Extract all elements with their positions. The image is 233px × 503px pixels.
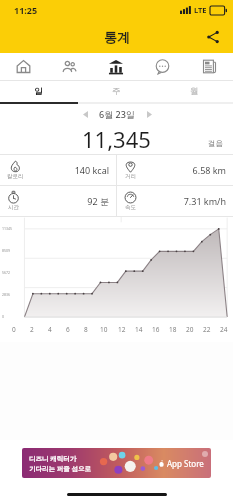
staticText: 8: [84, 325, 88, 334]
staticText: 주: [112, 86, 121, 97]
staticText: 16: [152, 325, 160, 334]
staticText: 6.58 km: [137, 164, 226, 176]
button[interactable]: 거리: [117, 155, 233, 185]
button[interactable]: 일: [0, 81, 77, 102]
staticText: 월: [190, 86, 199, 97]
staticText: 2836: [2, 292, 11, 297]
button[interactable]: Next day: [141, 106, 157, 122]
staticText: 92 분: [20, 195, 109, 207]
button[interactable]: 월: [155, 81, 233, 102]
staticText: 22: [203, 325, 211, 334]
staticText: 8509: [2, 248, 11, 253]
button[interactable]: 디즈니 캐릭터가: [22, 448, 211, 478]
staticText: 6: [66, 325, 70, 334]
staticText: 24: [220, 325, 228, 334]
button[interactable]: Share: [201, 25, 225, 49]
staticText: 통계: [104, 29, 130, 45]
staticText: 시간: [8, 204, 19, 211]
staticText: 7.31 km/h: [137, 195, 226, 207]
button[interactable]: 주: [77, 81, 155, 102]
staticText: 0: [12, 325, 16, 334]
staticText: LTE: [194, 5, 207, 15]
staticText: 11,345: [82, 124, 151, 154]
button[interactable]: 칼로리: [0, 155, 116, 185]
staticText: 20: [186, 325, 194, 334]
button[interactable]: News: [186, 53, 233, 80]
staticText: 12: [118, 325, 126, 334]
staticText: 4: [48, 325, 52, 334]
staticText: 140 kcal: [24, 164, 109, 176]
staticText: 디즈니 캐릭터가: [29, 454, 77, 463]
staticText: 일: [34, 86, 43, 97]
staticText: 11345: [2, 226, 13, 231]
button[interactable]: Home: [0, 53, 46, 80]
button[interactable]: Previous day: [77, 106, 93, 122]
button[interactable]: 속도: [117, 186, 233, 216]
staticText: 5672: [2, 270, 11, 275]
staticText: 2: [30, 325, 34, 334]
staticText: 6월 23일: [99, 108, 135, 120]
button[interactable]: Friends: [46, 53, 92, 80]
staticText: 걸음: [208, 139, 223, 148]
staticText: 0: [2, 314, 5, 319]
staticText: 기다리는 퍼즐 섬으로: [29, 464, 91, 473]
staticText: 거리: [125, 173, 136, 180]
button[interactable]: Statistics: [92, 53, 139, 80]
staticText: 18: [169, 325, 177, 334]
staticText: 11:25: [14, 4, 38, 16]
staticText: 속도: [125, 204, 136, 211]
button[interactable]: Chat: [139, 53, 186, 80]
staticText: App Store: [167, 458, 204, 469]
button[interactable]: Ad info: [202, 451, 208, 457]
staticText: 10: [100, 325, 108, 334]
button[interactable]: 시간: [0, 186, 116, 216]
staticText: 14: [135, 325, 143, 334]
staticText: 칼로리: [7, 173, 24, 180]
